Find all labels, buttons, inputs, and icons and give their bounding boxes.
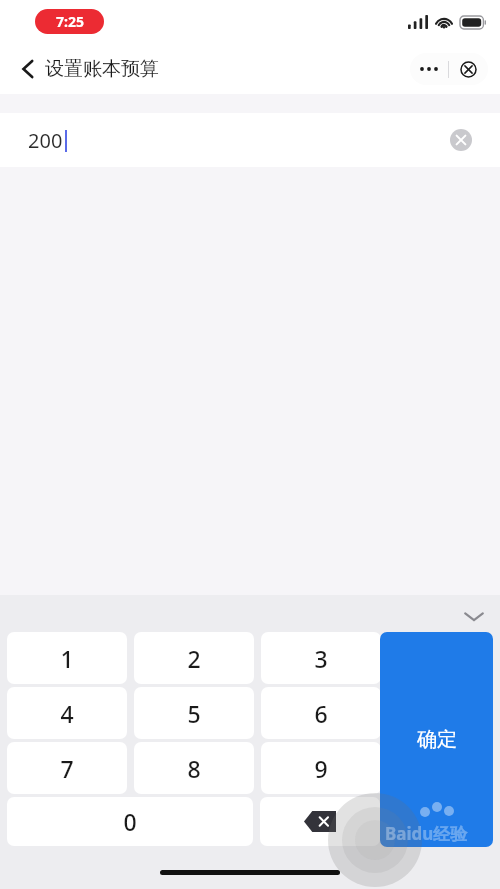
- staticText: 确定: [417, 727, 457, 752]
- staticText: 9: [314, 753, 328, 784]
- button[interactable]: 0: [7, 797, 253, 846]
- button[interactable]: More options: [410, 53, 448, 85]
- staticText: 6: [314, 698, 328, 729]
- button[interactable]: 1: [7, 632, 127, 684]
- other: Back: [22, 59, 34, 79]
- staticText: 5: [187, 698, 201, 729]
- button[interactable]: 确定: [380, 632, 493, 847]
- staticText: 3: [314, 643, 328, 674]
- staticText: 4: [60, 698, 74, 729]
- button[interactable]: 6: [261, 687, 381, 739]
- staticText: 0: [123, 806, 137, 837]
- button[interactable]: Back: [18, 51, 163, 87]
- button[interactable]: 4: [7, 687, 127, 739]
- staticText: 200: [28, 127, 63, 154]
- staticText: 2: [187, 643, 201, 674]
- staticText: 1: [60, 643, 74, 674]
- staticText: 7:25: [56, 12, 84, 31]
- button[interactable]: 8: [134, 742, 254, 794]
- button[interactable]: 9: [261, 742, 381, 794]
- button[interactable]: 200: [0, 113, 500, 167]
- button[interactable]: 3: [261, 632, 381, 684]
- button[interactable]: Clear text: [448, 127, 474, 153]
- button[interactable]: Close: [449, 53, 488, 85]
- staticText: Baidu经验: [385, 822, 500, 889]
- staticText: 8: [187, 753, 201, 784]
- button[interactable]: Backspace: [260, 797, 380, 846]
- button[interactable]: 5: [134, 687, 254, 739]
- button[interactable]: Hide keyboard: [456, 598, 492, 634]
- button[interactable]: 7: [7, 742, 127, 794]
- staticText: 设置账本预算: [45, 57, 159, 81]
- button[interactable]: 2: [134, 632, 254, 684]
- staticText: 7: [60, 753, 74, 784]
